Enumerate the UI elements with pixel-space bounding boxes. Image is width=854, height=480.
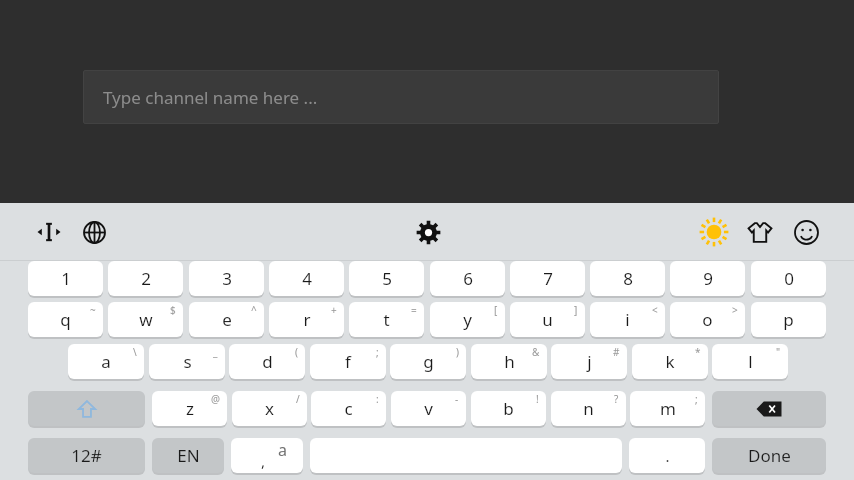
button[interactable]: 1 bbox=[28, 261, 103, 296]
button[interactable]: d bbox=[229, 344, 305, 379]
staticText: $ bbox=[170, 303, 176, 317]
staticText: Done bbox=[748, 444, 791, 467]
button[interactable]: f bbox=[310, 344, 386, 379]
staticText: z bbox=[186, 397, 194, 420]
staticText: 0 bbox=[784, 267, 794, 290]
staticText: c bbox=[344, 397, 353, 420]
staticText: m bbox=[660, 397, 676, 420]
button[interactable]: y bbox=[430, 302, 505, 337]
button[interactable]: 8 bbox=[590, 261, 665, 296]
staticText: o bbox=[702, 308, 713, 331]
button[interactable]: k bbox=[632, 344, 708, 379]
staticText: + bbox=[331, 303, 337, 317]
staticText: n bbox=[583, 397, 594, 420]
button[interactable]: r bbox=[269, 302, 344, 337]
staticText: ( bbox=[295, 345, 298, 359]
staticText: ~ bbox=[90, 303, 96, 317]
staticText: 3 bbox=[222, 267, 232, 290]
button[interactable]: 12# bbox=[28, 438, 145, 473]
staticText: ) bbox=[456, 345, 459, 359]
staticText: > bbox=[732, 303, 738, 317]
button[interactable]: Shift bbox=[28, 391, 145, 426]
button[interactable]: Comma bbox=[231, 438, 303, 473]
staticText: / bbox=[296, 392, 300, 406]
staticText: \ bbox=[133, 345, 137, 359]
button[interactable]: x bbox=[232, 391, 307, 426]
button[interactable]: Move cursor bbox=[30, 203, 68, 261]
staticText: h bbox=[504, 350, 515, 373]
staticText: & bbox=[532, 345, 540, 359]
staticText: a bbox=[101, 350, 111, 373]
button[interactable]: w bbox=[108, 302, 183, 337]
staticText: ; bbox=[695, 392, 698, 406]
staticText: , bbox=[261, 451, 266, 471]
staticText: u bbox=[542, 308, 553, 331]
button[interactable]: Theme bbox=[740, 203, 780, 261]
staticText: y bbox=[463, 308, 472, 331]
staticText: q bbox=[60, 308, 71, 331]
staticText: @ bbox=[211, 392, 220, 406]
button[interactable]: l bbox=[712, 344, 788, 379]
button[interactable]: 6 bbox=[430, 261, 505, 296]
button[interactable]: 5 bbox=[349, 261, 424, 296]
button[interactable]: u bbox=[510, 302, 585, 337]
staticText: Type channel name here ... bbox=[103, 86, 318, 109]
button[interactable]: g bbox=[390, 344, 466, 379]
staticText: ^ bbox=[251, 303, 257, 317]
button[interactable]: p bbox=[751, 302, 826, 337]
button[interactable]: EN bbox=[152, 438, 224, 473]
button[interactable]: 4 bbox=[269, 261, 344, 296]
button[interactable]: 2 bbox=[108, 261, 183, 296]
staticText: d bbox=[262, 350, 273, 373]
button[interactable]: 9 bbox=[670, 261, 745, 296]
staticText: " bbox=[776, 345, 781, 359]
button[interactable]: Backspace bbox=[712, 391, 826, 426]
button[interactable]: n bbox=[551, 391, 626, 426]
button[interactable]: 7 bbox=[510, 261, 585, 296]
button[interactable]: Emoji bbox=[786, 203, 826, 261]
staticText: # bbox=[613, 345, 620, 359]
staticText: b bbox=[503, 397, 514, 420]
staticText: 4 bbox=[302, 267, 312, 290]
button[interactable]: s bbox=[149, 344, 225, 379]
button[interactable]: h bbox=[471, 344, 547, 379]
staticText: 6 bbox=[463, 267, 473, 290]
button[interactable]: Settings bbox=[406, 203, 450, 261]
button[interactable]: z bbox=[152, 391, 227, 426]
staticText: 5 bbox=[382, 267, 392, 290]
staticText: r bbox=[303, 308, 311, 331]
button[interactable]: q bbox=[28, 302, 103, 337]
button[interactable]: c bbox=[311, 391, 386, 426]
button[interactable]: Done bbox=[712, 438, 826, 473]
staticText: t bbox=[383, 308, 390, 331]
staticText: . bbox=[665, 446, 670, 466]
staticText: < bbox=[652, 303, 658, 317]
staticText: e bbox=[222, 308, 232, 331]
staticText: _ bbox=[213, 345, 218, 359]
button[interactable]: . bbox=[629, 438, 705, 473]
button[interactable]: 3 bbox=[189, 261, 264, 296]
button[interactable]: e bbox=[189, 302, 264, 337]
button[interactable]: b bbox=[471, 391, 546, 426]
button[interactable]: Brightness bbox=[693, 203, 735, 261]
staticText: 9 bbox=[703, 267, 713, 290]
staticText: 7 bbox=[543, 267, 553, 290]
button[interactable]: t bbox=[349, 302, 424, 337]
staticText: a bbox=[278, 439, 287, 461]
staticText: w bbox=[139, 308, 153, 331]
button[interactable]: v bbox=[391, 391, 466, 426]
staticText: = bbox=[411, 303, 417, 317]
staticText: v bbox=[424, 397, 433, 420]
button[interactable]: i bbox=[590, 302, 665, 337]
button[interactable]: m bbox=[630, 391, 705, 426]
button[interactable]: o bbox=[670, 302, 745, 337]
button[interactable]: a bbox=[68, 344, 144, 379]
button[interactable]: j bbox=[551, 344, 627, 379]
staticText: : bbox=[376, 392, 379, 406]
button[interactable]: 0 bbox=[751, 261, 826, 296]
button[interactable]: Type channel name here ... bbox=[83, 70, 719, 124]
staticText: s bbox=[183, 350, 192, 373]
button[interactable]: Change language bbox=[75, 203, 113, 261]
staticText: g bbox=[423, 350, 434, 373]
